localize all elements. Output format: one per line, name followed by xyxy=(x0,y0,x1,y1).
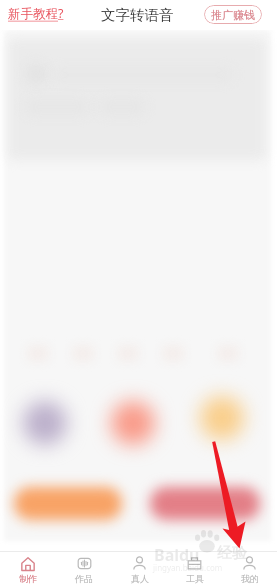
button[interactable]: 制作 xyxy=(0,552,56,588)
button[interactable]: 工具 xyxy=(167,552,222,588)
staticText: 作品 xyxy=(75,573,93,584)
staticText: 真人 xyxy=(131,573,149,584)
button[interactable]: 我的 xyxy=(222,552,277,588)
button[interactable]: 新手教程? xyxy=(6,3,66,24)
staticText: 新手教程? xyxy=(8,5,64,22)
button[interactable]: 作品 xyxy=(56,552,112,588)
staticText: 工具 xyxy=(186,573,204,584)
staticText: 我的 xyxy=(241,573,259,584)
staticText: 文字转语音 xyxy=(101,6,174,24)
staticText: jingyan.baidu.com xyxy=(153,562,223,573)
staticText: 经验 xyxy=(217,544,247,563)
button[interactable]: 真人 xyxy=(112,552,167,588)
staticText: 制作 xyxy=(19,573,37,584)
staticText: 推广赚钱 xyxy=(211,8,255,22)
staticText: Baidu xyxy=(154,544,200,566)
button[interactable]: 推广赚钱 xyxy=(204,5,262,24)
